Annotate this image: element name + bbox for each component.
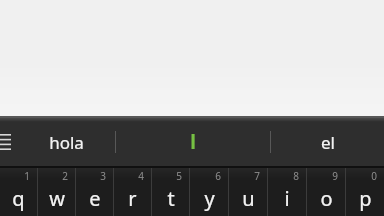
button[interactable]: Input options	[0, 118, 18, 166]
button[interactable]: 5	[152, 168, 189, 216]
button[interactable]: 4	[114, 168, 151, 216]
staticText: i	[284, 185, 290, 212]
staticText: w	[49, 185, 65, 212]
staticText: hola	[49, 131, 84, 154]
staticText: q	[12, 185, 25, 212]
staticText: t	[167, 185, 175, 212]
button[interactable]: 7	[229, 168, 267, 216]
staticText: 6	[215, 169, 221, 183]
staticText: 8	[293, 169, 299, 183]
button[interactable]: el	[271, 118, 384, 166]
staticText: p	[359, 185, 372, 212]
button[interactable]: 8	[268, 168, 306, 216]
staticText: 5	[176, 169, 182, 183]
staticText: e	[89, 185, 101, 212]
staticText: o	[320, 185, 333, 212]
button[interactable]: 2	[38, 168, 75, 216]
staticText: 7	[254, 169, 260, 183]
button[interactable]: 0	[346, 168, 384, 216]
button[interactable]: l	[116, 118, 270, 166]
staticText: l	[190, 129, 196, 155]
button[interactable]: 6	[190, 168, 228, 216]
staticText: r	[128, 185, 137, 212]
staticText: 9	[332, 169, 338, 183]
button[interactable]: 1	[0, 168, 37, 216]
button[interactable]: 9	[307, 168, 345, 216]
staticText: 2	[62, 169, 68, 183]
staticText: el	[321, 131, 335, 154]
button[interactable]: hola	[18, 118, 115, 166]
staticText: y	[204, 185, 215, 212]
button[interactable]: 3	[76, 168, 113, 216]
staticText: 0	[371, 169, 377, 183]
staticText: 3	[100, 169, 106, 183]
staticText: 1	[24, 169, 30, 183]
staticText: 4	[138, 169, 144, 183]
staticText: u	[242, 185, 255, 212]
